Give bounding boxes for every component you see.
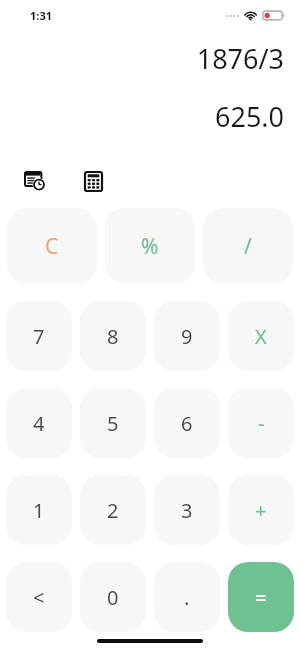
button[interactable]: Calculator <box>78 166 108 196</box>
button[interactable]: 3 <box>154 475 220 545</box>
button[interactable]: 4 <box>6 388 72 458</box>
staticText: / <box>244 232 252 261</box>
button[interactable]: / <box>203 208 293 284</box>
button[interactable]: % <box>105 208 195 284</box>
staticText: < <box>33 584 45 611</box>
staticText: 8 <box>107 323 119 350</box>
button[interactable]: X <box>228 301 294 371</box>
button[interactable]: 1 <box>6 475 72 545</box>
staticText: 5 <box>107 410 119 437</box>
staticText: . <box>184 584 190 611</box>
button[interactable]: 7 <box>6 301 72 371</box>
button[interactable]: - <box>228 388 294 458</box>
staticText: - <box>258 410 265 437</box>
staticText: 7 <box>33 323 45 350</box>
button[interactable]: 8 <box>80 301 146 371</box>
button[interactable]: 2 <box>80 475 146 545</box>
button[interactable]: 9 <box>154 301 220 371</box>
staticText: 1:31 <box>30 8 52 23</box>
button[interactable]: = <box>228 562 294 632</box>
button[interactable]: + <box>228 475 294 545</box>
staticText: 3 <box>181 497 193 524</box>
button[interactable]: 5 <box>80 388 146 458</box>
staticText: C <box>45 232 59 261</box>
staticText: 1 <box>33 497 45 524</box>
button[interactable]: 0 <box>80 562 146 632</box>
staticText: 9 <box>181 323 193 350</box>
staticText: + <box>255 497 267 524</box>
staticText: 625.0 <box>214 98 284 130</box>
button[interactable]: 6 <box>154 388 220 458</box>
button[interactable]: . <box>154 562 220 632</box>
staticText: 1876/3 <box>196 40 284 72</box>
staticText: X <box>255 323 267 350</box>
button[interactable]: History <box>20 166 50 196</box>
staticText: 0 <box>107 584 119 611</box>
button[interactable]: C <box>7 208 97 284</box>
staticText: = <box>255 584 267 611</box>
button[interactable]: < <box>6 562 72 632</box>
staticText: 2 <box>107 497 119 524</box>
staticText: 6 <box>181 410 193 437</box>
staticText: % <box>141 232 159 261</box>
staticText: 4 <box>33 410 45 437</box>
